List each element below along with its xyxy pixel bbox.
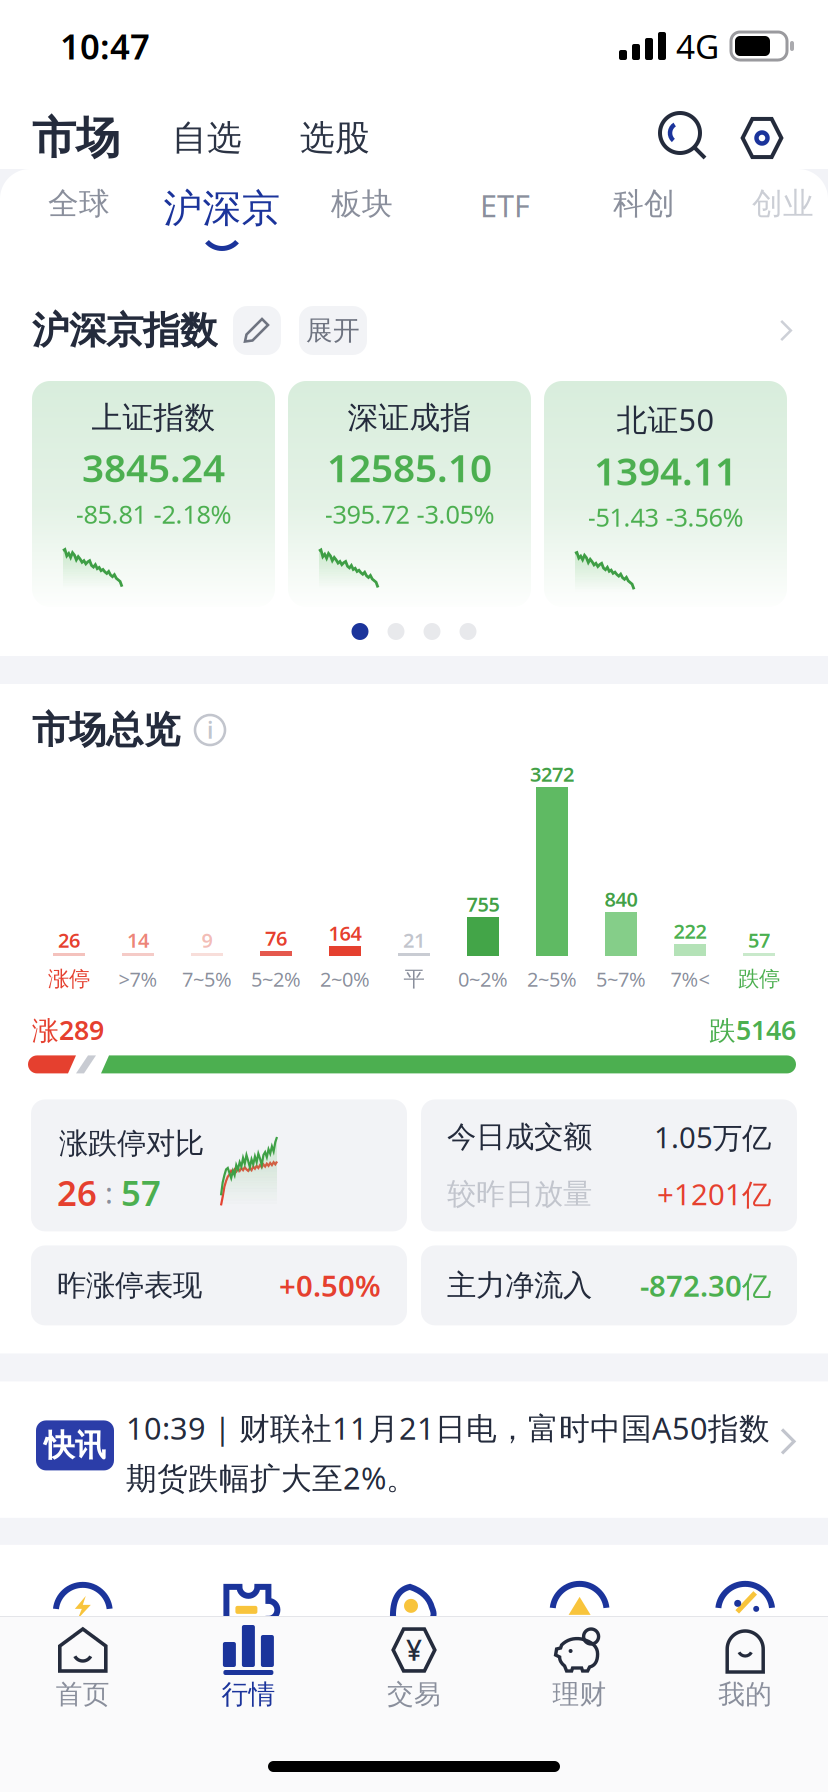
button[interactable]: 沪深京 [147, 169, 297, 265]
staticText: 3272 [530, 761, 574, 787]
button[interactable]: 展开 [299, 306, 367, 355]
staticText: 2~5% [527, 966, 577, 992]
button[interactable]: 选股 [300, 117, 370, 159]
staticText: -85.81 -2.18% [75, 497, 231, 531]
staticText: 57 [121, 1169, 161, 1215]
staticText: ¥ [406, 1631, 422, 1669]
staticText: 快讯 [44, 1427, 106, 1464]
button[interactable]: ETF [430, 169, 580, 265]
staticText: 平 [403, 966, 424, 992]
button[interactable]: 市场 [32, 111, 120, 165]
button[interactable]: Search [658, 112, 710, 164]
staticText: 1394.11 [594, 445, 737, 496]
staticText: 57 [748, 927, 770, 953]
staticText: -872.30亿 [640, 1266, 771, 1305]
staticText: 5~7% [596, 966, 646, 992]
button[interactable]: More [778, 318, 794, 343]
staticText: 首页 [56, 1678, 110, 1711]
staticText: -51.43 -3.56% [587, 500, 743, 534]
staticText: 222 [673, 918, 706, 944]
staticText: 7%< [670, 966, 709, 992]
staticText: 76 [265, 925, 287, 951]
button[interactable]: 行情 [166, 1617, 331, 1733]
staticText: 行情 [221, 1678, 275, 1711]
staticText: 沪深京指数 [32, 308, 217, 353]
button[interactable]: Edit [233, 306, 281, 355]
button[interactable]: 深证成指 [288, 381, 531, 607]
staticText: 上证指数 [91, 399, 215, 437]
staticText: 26 [57, 1169, 97, 1215]
button[interactable]: 创业 [708, 169, 828, 265]
staticText: i [207, 715, 213, 745]
staticText: 涨289 [32, 1012, 104, 1047]
button[interactable]: Settings [736, 112, 788, 164]
staticText: 2~0% [320, 966, 370, 992]
staticText: 5~2% [251, 966, 301, 992]
staticText: 14 [127, 927, 149, 953]
staticText: 3845.24 [82, 442, 225, 493]
staticText: 理财 [553, 1678, 607, 1711]
staticText: 北证50 [616, 399, 714, 440]
button[interactable]: 上证指数 [32, 381, 275, 607]
staticText: +0.50% [279, 1266, 381, 1305]
button[interactable]: 理财 [497, 1617, 662, 1733]
staticText: 840 [604, 886, 637, 912]
staticText: 期货跌幅扩大至2%。 [126, 1457, 417, 1498]
staticText: 跌停 [738, 966, 780, 992]
button[interactable]: 科创 [569, 169, 719, 265]
staticText: 市场总览 [32, 707, 180, 753]
staticText: 板块 [331, 185, 393, 223]
button[interactable]: Info [190, 710, 230, 750]
staticText: 164 [328, 920, 361, 946]
button[interactable]: 全球 [4, 169, 154, 265]
staticText: 21 [403, 927, 425, 953]
button[interactable]: 首页 [0, 1617, 166, 1733]
staticText: 全球 [48, 185, 110, 223]
staticText: 我的 [718, 1678, 772, 1711]
staticText: 10:47 [60, 23, 150, 69]
staticText: 深证成指 [347, 399, 471, 437]
staticText: 沪深京 [163, 185, 280, 232]
staticText: ETF [480, 185, 530, 226]
staticText: +1201亿 [657, 1174, 771, 1213]
staticText: 9 [201, 927, 212, 953]
button[interactable]: 北证50 [544, 381, 787, 607]
staticText: 今日成交额 [447, 1119, 592, 1155]
staticText: 市场 [32, 111, 120, 165]
staticText: 较昨日放量 [447, 1176, 592, 1212]
staticText: 创业 [752, 185, 814, 223]
button[interactable]: 快讯 [0, 1381, 828, 1518]
staticText: 跌5146 [709, 1012, 796, 1047]
staticText: 4G [676, 24, 719, 68]
staticText: 自选 [172, 117, 242, 159]
staticText: >7% [118, 966, 157, 992]
staticText: : [97, 1173, 121, 1212]
staticText: -395.72 -3.05% [324, 497, 494, 531]
staticText: 选股 [300, 117, 370, 159]
staticText: 涨停 [48, 966, 90, 992]
staticText: 主力净流入 [447, 1267, 592, 1303]
staticText: 展开 [306, 314, 360, 347]
staticText: 昨涨停表现 [57, 1267, 202, 1303]
staticText: 0~2% [458, 966, 508, 992]
button[interactable]: 自选 [172, 117, 242, 159]
staticText: 涨跌停对比 [59, 1125, 204, 1161]
staticText: 科创 [613, 185, 675, 223]
staticText: 12585.10 [327, 442, 492, 493]
staticText: 交易 [387, 1678, 441, 1711]
staticText: 26 [58, 927, 80, 953]
staticText: 10:39 | 财联社11月21日电，富时中国A50指数 [126, 1407, 770, 1448]
button[interactable]: 板块 [287, 169, 437, 265]
staticText: 1.05万亿 [654, 1117, 771, 1156]
staticText: 7~5% [182, 966, 232, 992]
staticText: 755 [466, 891, 499, 917]
button[interactable]: ¥ [331, 1617, 497, 1733]
button[interactable]: 我的 [662, 1617, 828, 1733]
